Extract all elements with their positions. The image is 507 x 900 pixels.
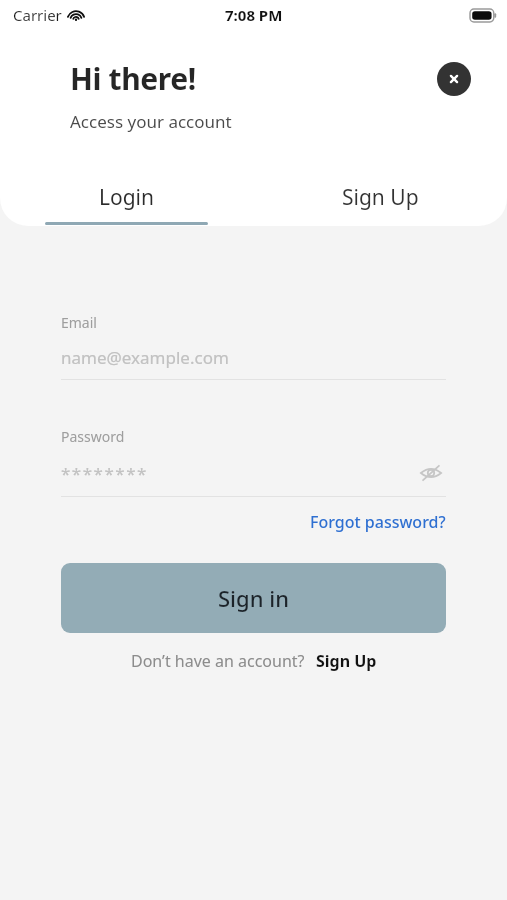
button[interactable]: Sign Up xyxy=(316,650,377,672)
staticText: ******** xyxy=(61,462,416,485)
staticText: Login xyxy=(99,183,155,212)
button[interactable]: Sign in xyxy=(61,563,446,633)
staticText: Password xyxy=(61,427,125,446)
button[interactable]: Sign Up xyxy=(253,183,507,222)
button[interactable]: Close xyxy=(437,62,471,96)
staticText: Access your account xyxy=(70,110,232,133)
staticText: 7:08 PM xyxy=(225,5,283,25)
staticText: Carrier xyxy=(13,5,62,25)
staticText: Sign in xyxy=(218,583,289,613)
staticText: Email xyxy=(61,313,97,332)
staticText: Don’t have an account? xyxy=(131,650,305,672)
staticText: Hi there! xyxy=(70,58,196,99)
button[interactable]: Show password xyxy=(416,458,446,488)
staticText: Forgot password? xyxy=(310,511,446,533)
button[interactable]: Forgot password? xyxy=(310,511,446,533)
button[interactable]: Login xyxy=(0,183,253,225)
staticText: Sign Up xyxy=(342,183,419,212)
staticText: Sign Up xyxy=(316,650,377,672)
staticText: name@example.com xyxy=(61,346,229,369)
